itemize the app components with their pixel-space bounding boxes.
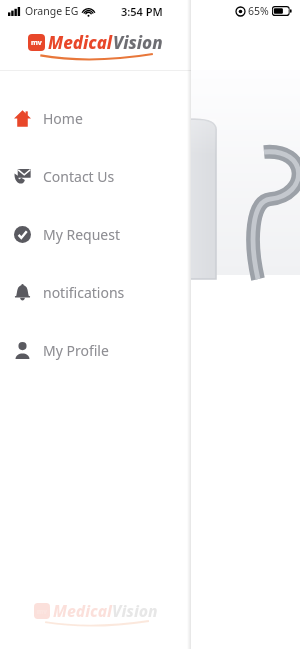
staticText: mv: [31, 38, 42, 48]
button[interactable]: Notifications: [0, 263, 191, 321]
staticText: notifications: [43, 283, 125, 302]
staticText: Medical: [53, 600, 112, 621]
other: Home: [14, 110, 31, 127]
other: Contact Us: [14, 168, 31, 185]
other: Notifications: [14, 284, 31, 301]
staticText: My Profile: [43, 341, 109, 360]
other: My Profile: [14, 342, 31, 359]
staticText: My Request: [43, 225, 120, 244]
staticText: Vision: [112, 600, 158, 621]
staticText: Contact Us: [43, 167, 115, 186]
staticText: Vision: [113, 31, 163, 54]
staticText: Home: [43, 109, 83, 128]
staticText: 65%: [248, 4, 269, 18]
button[interactable]: My Request: [0, 205, 191, 263]
staticText: Orange EG: [25, 4, 79, 18]
button[interactable]: My Profile: [0, 321, 191, 379]
other: My Request: [14, 226, 31, 243]
button[interactable]: Home: [0, 89, 191, 147]
button[interactable]: News: [8, 305, 294, 422]
button[interactable]: Contact Us: [0, 147, 191, 205]
staticText: Medical: [48, 31, 113, 54]
staticText: 3:54 PM: [121, 4, 163, 19]
